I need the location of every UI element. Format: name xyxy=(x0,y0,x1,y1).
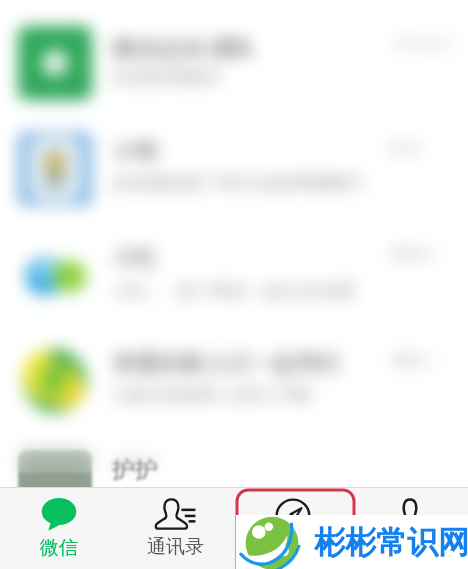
staticText: 星期三 xyxy=(390,245,438,265)
button[interactable]: WeChat xyxy=(0,487,117,569)
staticText: 小红 xyxy=(112,243,158,272)
staticText: 我 xyxy=(400,537,419,561)
staticText: 护护 xyxy=(112,455,158,484)
button[interactable]: Discover xyxy=(234,487,351,569)
staticText: 好的我知道了明天见面再聊聊天 xyxy=(112,172,364,195)
staticText: 欢迎使用微信 xyxy=(112,66,220,89)
staticText: 欢迎使用微信 xyxy=(112,66,220,89)
button[interactable]: 微信运动 团队 xyxy=(0,12,468,118)
button[interactable]: 小红 xyxy=(0,224,468,330)
button[interactable]: 护护 xyxy=(0,436,468,542)
button[interactable]: Me xyxy=(351,487,468,569)
staticText: 小明 xyxy=(112,137,158,166)
staticText: 亲爱的家人们一起同行 xyxy=(112,349,342,378)
button[interactable]: 亲爱的家人们一起同行 xyxy=(0,330,468,436)
staticText: 微信运动 团队 xyxy=(112,31,256,62)
staticText: 小明 xyxy=(112,137,158,166)
staticText: 彬彬常识网 xyxy=(314,523,468,562)
staticText: 微信运动 团队 xyxy=(112,31,256,62)
staticText: 通讯录 xyxy=(147,535,204,559)
staticText: 发现 xyxy=(274,539,312,563)
staticText: 小红： 这个周末一起出去玩吧 xyxy=(112,278,356,303)
button[interactable]: 小明 xyxy=(0,118,468,224)
staticText: 大家记得按时上班打卡哦 xyxy=(112,384,310,407)
button[interactable]: 小明 xyxy=(0,118,468,224)
staticText: 护护 xyxy=(112,455,158,484)
button[interactable]: 亲爱的家人们一起同行 xyxy=(0,330,468,436)
staticText: 好的我知道了明天见面再聊聊天 xyxy=(112,172,364,195)
button[interactable]: 护护 xyxy=(0,436,468,542)
button[interactable]: 小红 xyxy=(0,224,468,330)
staticText: 星期二 xyxy=(390,351,438,371)
button[interactable]: Contacts xyxy=(117,487,234,569)
staticText: 星期三 xyxy=(390,245,438,265)
staticText: 小红： 这个周末一起出去玩吧 xyxy=(112,278,356,303)
staticText: 大家记得按时上班打卡哦 xyxy=(112,384,310,407)
button[interactable]: 微信运动 团队 xyxy=(0,12,468,118)
staticText: 亲爱的家人们一起同行 xyxy=(112,349,342,378)
staticText: 微信 xyxy=(40,536,78,560)
staticText: 星期二 xyxy=(390,351,438,371)
staticText: 小红 xyxy=(112,243,158,272)
